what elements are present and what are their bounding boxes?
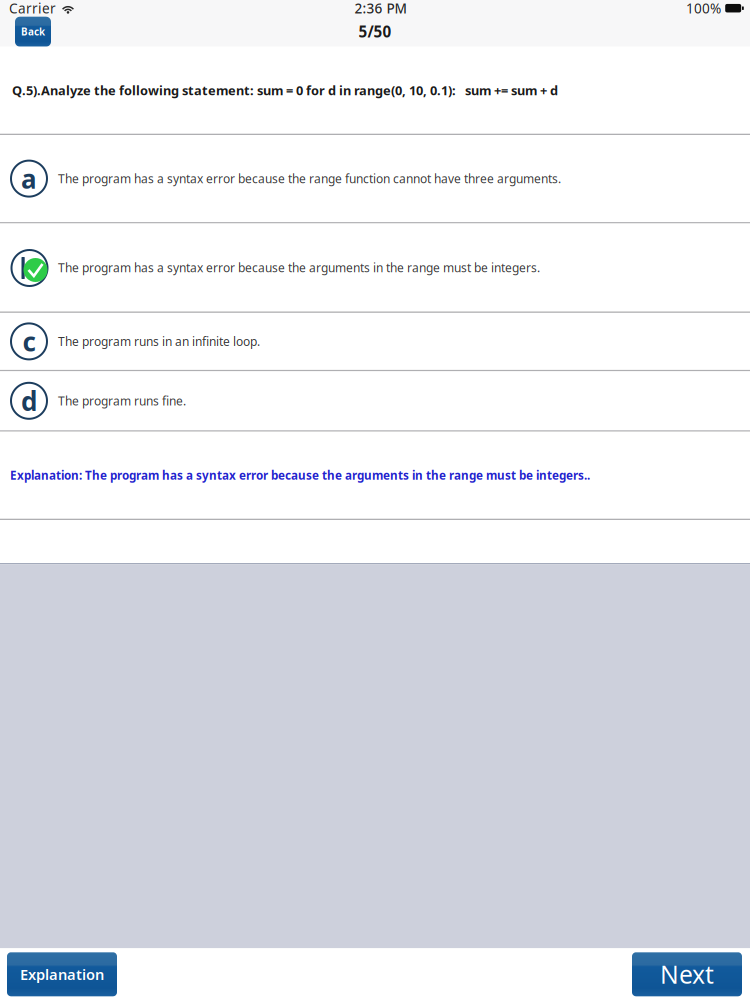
staticText: Carrier	[9, 0, 56, 17]
staticText: a	[21, 161, 37, 196]
button[interactable]: Next	[632, 952, 742, 996]
staticText: 5/50	[358, 22, 391, 42]
staticText: The program runs in an infinite loop.	[58, 333, 260, 349]
staticText: c	[22, 324, 35, 359]
staticText: The program runs fine.	[58, 393, 186, 409]
staticText: Next	[660, 958, 714, 991]
button[interactable]: c	[0, 313, 750, 370]
staticText: 100%	[686, 0, 721, 17]
staticText: Q.5).Analyze the following statement: su…	[12, 82, 558, 99]
staticText: Back	[21, 25, 45, 38]
staticText: The program has a syntax error because t…	[58, 259, 540, 275]
staticText: d	[21, 383, 37, 418]
button[interactable]: Back	[15, 17, 51, 47]
staticText: 2:36 PM	[354, 0, 406, 17]
button[interactable]: a	[0, 135, 750, 222]
staticText: Explanation: The program has a syntax er…	[10, 467, 590, 483]
staticText: The program has a syntax error because t…	[58, 171, 561, 186]
staticText: Explanation	[20, 965, 104, 984]
button[interactable]: The program has a syntax error because t…	[0, 223, 750, 311]
button[interactable]: Explanation	[7, 952, 117, 996]
button[interactable]: d	[0, 371, 750, 430]
